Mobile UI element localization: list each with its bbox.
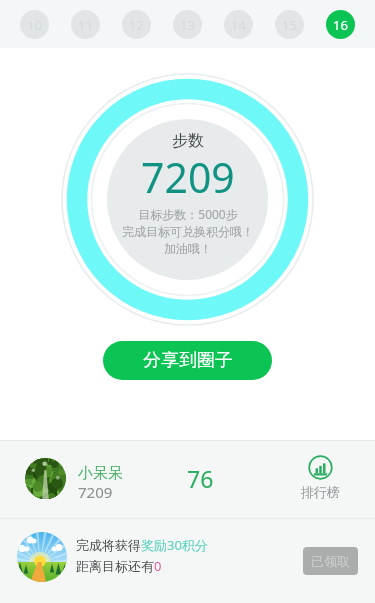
button[interactable]: 11 <box>71 10 100 39</box>
button[interactable]: 12 <box>122 10 151 39</box>
button[interactable]: 排行榜 <box>296 455 344 500</box>
button[interactable]: 14 <box>224 10 253 39</box>
staticText: 步数 <box>172 131 204 151</box>
staticText: 距离目标还有0 <box>76 557 162 575</box>
staticText: 完成将获得奖励30积分 <box>76 536 208 554</box>
staticText: 13 <box>180 16 195 34</box>
staticText: 排行榜 <box>301 484 340 500</box>
staticText: 完成目标可兑换积分哦！ <box>122 224 254 239</box>
staticText: 小呆呆 <box>78 464 123 483</box>
staticText: 16 <box>333 16 348 34</box>
button[interactable]: 13 <box>173 10 202 39</box>
staticText: 目标步数：5000步 <box>138 206 238 222</box>
staticText: 已领取 <box>311 553 350 569</box>
staticText: 7209 <box>78 482 113 502</box>
button[interactable]: 16 <box>326 10 355 39</box>
staticText: 12 <box>129 16 144 34</box>
staticText: 14 <box>231 16 246 34</box>
staticText: 15 <box>282 16 297 34</box>
button[interactable]: 小呆呆 <box>0 441 375 518</box>
staticText: 11 <box>78 16 93 34</box>
button[interactable]: 15 <box>275 10 304 39</box>
button[interactable]: 已领取 <box>303 547 358 575</box>
button[interactable]: 分享到圈子 <box>103 341 272 380</box>
staticText: 10 <box>27 16 42 34</box>
staticText: 7209 <box>141 149 235 205</box>
button[interactable]: 10 <box>20 10 49 39</box>
staticText: 76 <box>187 463 214 494</box>
staticText: 分享到圈子 <box>143 349 233 372</box>
staticText: 加油哦！ <box>164 241 212 256</box>
